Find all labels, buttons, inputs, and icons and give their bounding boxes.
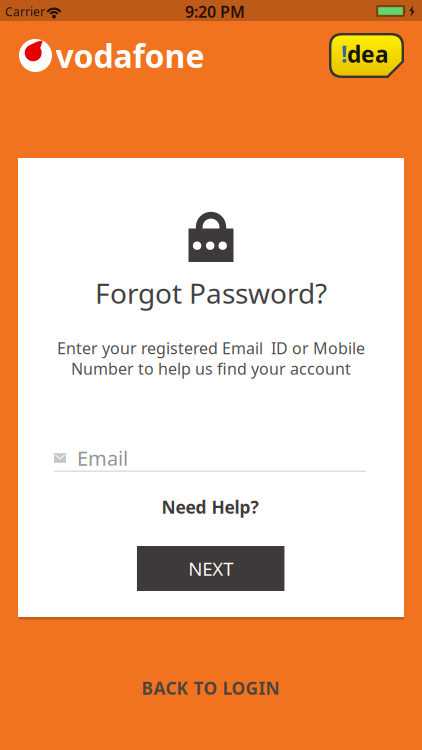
staticText: Forgot Password? [95, 274, 327, 312]
staticText: Carrier [5, 3, 45, 19]
staticText: Email [77, 445, 128, 471]
staticText: NEXT [188, 556, 233, 581]
button[interactable]: BACK TO LOGIN [131, 670, 289, 705]
staticText: vodafone [55, 34, 204, 77]
button[interactable]: Need Help? [153, 491, 266, 522]
staticText: BACK TO LOGIN [141, 676, 279, 699]
staticText: ! [341, 39, 347, 69]
staticText: dea [347, 39, 389, 69]
staticText: Enter your registered Email ID or Mobile [57, 337, 365, 359]
staticText: 9:20 PM [185, 1, 245, 22]
button[interactable]: Email [54, 446, 366, 472]
button[interactable]: NEXT [137, 546, 284, 591]
staticText: Number to help us find your account [71, 358, 351, 379]
staticText: Need Help? [161, 495, 258, 518]
